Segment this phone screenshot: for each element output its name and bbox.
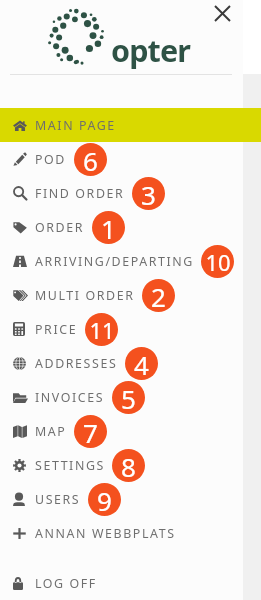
staticText: 6 — [83, 143, 98, 176]
button[interactable]: INVOICES — [0, 380, 261, 414]
staticText: 3 — [141, 177, 156, 210]
button[interactable]: SETTINGS — [0, 448, 261, 482]
staticText: LOG OFF — [35, 575, 97, 592]
staticText: 8 — [121, 449, 136, 482]
staticText: 11 — [89, 315, 115, 345]
button[interactable]: USERS — [0, 482, 261, 516]
staticText: 4 — [134, 347, 149, 380]
button[interactable]: PRICE — [0, 312, 261, 346]
staticText: 2 — [151, 279, 166, 312]
button[interactable]: MAP — [0, 414, 261, 448]
button[interactable]: LOG OFF — [0, 567, 261, 600]
staticText: PRICE — [35, 321, 78, 338]
staticText: 10 — [205, 247, 231, 277]
staticText: MAIN PAGE — [35, 117, 116, 134]
button[interactable]: ARRIVING/DEPARTING — [0, 244, 261, 278]
staticText: ADDRESSES — [35, 355, 118, 372]
staticText: opter — [111, 29, 190, 71]
staticText: 1 — [101, 211, 116, 244]
staticText: 7 — [83, 415, 98, 448]
staticText: ANNAN WEBBPLATS — [35, 525, 176, 542]
button[interactable]: FIND ORDER — [0, 176, 261, 210]
staticText: POD — [35, 151, 67, 168]
staticText: SETTINGS — [35, 457, 105, 474]
staticText: 9 — [97, 483, 112, 516]
button[interactable]: MULTI ORDER — [0, 278, 261, 312]
button[interactable]: MAIN PAGE — [0, 108, 261, 142]
staticText: MULTI ORDER — [35, 287, 135, 304]
staticText: 5 — [121, 381, 136, 414]
button[interactable]: POD — [0, 142, 261, 176]
staticText: MAP — [35, 423, 67, 440]
button[interactable]: ANNAN WEBBPLATS — [0, 516, 261, 550]
staticText: INVOICES — [35, 389, 105, 406]
staticText: FIND ORDER — [35, 185, 125, 202]
staticText: ARRIVING/DEPARTING — [35, 253, 194, 270]
button[interactable]: Close menu — [208, 0, 236, 27]
button[interactable]: ORDER — [0, 210, 261, 244]
staticText: ORDER — [35, 219, 85, 236]
staticText: USERS — [35, 491, 81, 508]
button[interactable]: ADDRESSES — [0, 346, 261, 380]
